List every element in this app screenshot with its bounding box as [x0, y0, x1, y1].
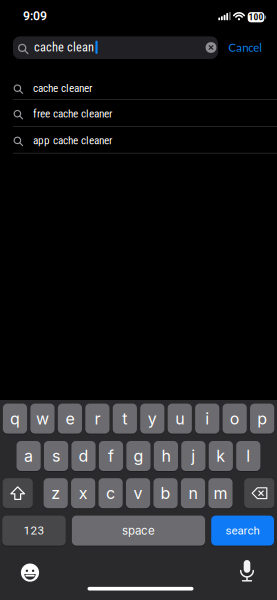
staticText: h [161, 446, 170, 466]
staticText: p [257, 409, 267, 428]
button[interactable]: space [72, 516, 205, 546]
button[interactable]: k [209, 441, 233, 471]
staticText: 123 [23, 524, 44, 537]
button[interactable]: Emoji [16, 559, 44, 587]
button[interactable]: f [99, 441, 123, 471]
staticText: g [133, 446, 143, 466]
button[interactable]: q [3, 404, 27, 434]
staticText: x [79, 483, 88, 503]
button[interactable]: search [211, 516, 274, 546]
staticText: t [122, 409, 127, 428]
staticText: a [24, 446, 33, 466]
button[interactable]: Shift [3, 478, 33, 508]
button[interactable]: cache cleaner [0, 75, 277, 102]
staticText: j [191, 446, 195, 466]
button[interactable]: h [154, 441, 178, 471]
staticText: r [94, 409, 100, 428]
button[interactable]: app cache cleaner [0, 127, 277, 154]
staticText: n [188, 483, 197, 503]
staticText: q [10, 409, 20, 428]
staticText: s [52, 446, 60, 466]
button[interactable]: c [98, 478, 123, 508]
staticText: b [160, 483, 170, 503]
button[interactable]: m [208, 478, 233, 508]
staticText: space [122, 524, 155, 538]
staticText: app cache cleaner [33, 134, 112, 147]
staticText: w [36, 409, 49, 428]
staticText: search [226, 524, 260, 537]
button[interactable]: e [58, 404, 82, 434]
staticText: Cancel [228, 40, 262, 54]
button[interactable]: Clear text [201, 37, 221, 57]
staticText: c [106, 483, 115, 503]
button[interactable]: z [44, 478, 68, 508]
button[interactable]: t [113, 404, 137, 434]
button[interactable]: j [181, 441, 205, 471]
staticText: i [205, 409, 209, 428]
staticText: f [108, 446, 114, 466]
button[interactable]: r [85, 404, 109, 434]
button[interactable]: s [44, 441, 68, 471]
staticText: v [134, 483, 143, 503]
button[interactable]: b [153, 478, 178, 508]
button[interactable]: d [71, 441, 96, 471]
staticText: cache clean [34, 40, 94, 54]
staticText: e [65, 409, 74, 428]
button[interactable]: y [140, 404, 164, 434]
staticText: z [51, 483, 60, 503]
button[interactable]: p [250, 404, 274, 434]
button[interactable]: Dictate [233, 558, 261, 584]
staticText: d [78, 446, 88, 466]
button[interactable]: o [223, 404, 247, 434]
button[interactable]: Cancel [228, 40, 262, 54]
button[interactable]: Delete [244, 478, 274, 508]
button[interactable]: 123 [2, 516, 66, 546]
staticText: k [216, 446, 225, 466]
button[interactable]: l [236, 441, 260, 471]
staticText: l [246, 446, 250, 466]
staticText: cache cleaner [33, 82, 92, 95]
staticText: u [175, 409, 184, 428]
staticText: 100 [248, 11, 263, 22]
staticText: 9:09 [23, 9, 47, 23]
button[interactable]: a [16, 441, 41, 471]
staticText: free cache cleaner [33, 107, 112, 120]
staticText: o [230, 409, 240, 428]
button[interactable]: free cache cleaner [0, 100, 277, 127]
button[interactable]: w [30, 404, 55, 434]
button[interactable]: i [195, 404, 219, 434]
button[interactable]: x [71, 478, 95, 508]
staticText: y [148, 409, 157, 428]
staticText: m [213, 483, 227, 503]
button[interactable]: v [126, 478, 150, 508]
button[interactable]: u [168, 404, 192, 434]
button[interactable]: n [181, 478, 205, 508]
button[interactable]: g [126, 441, 150, 471]
